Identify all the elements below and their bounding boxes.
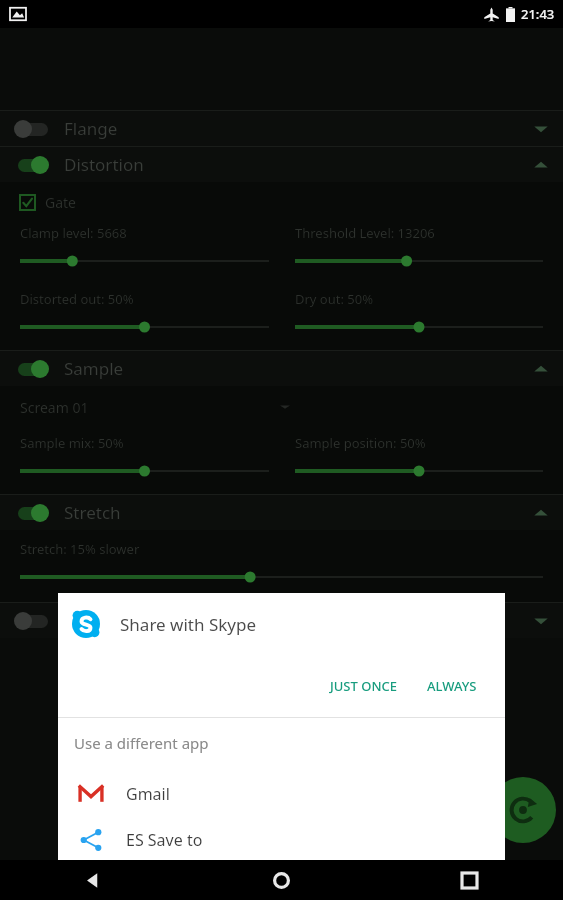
button[interactable]: JUST ONCE xyxy=(318,669,409,703)
button[interactable] xyxy=(20,320,269,334)
button[interactable] xyxy=(20,464,269,478)
staticText: Gate xyxy=(45,193,76,212)
button[interactable] xyxy=(20,254,269,268)
staticText: Use a different app xyxy=(74,733,209,753)
staticText: Sample xyxy=(64,357,124,380)
button[interactable]: Gmail xyxy=(58,768,505,820)
staticText: Sample mix: 50% xyxy=(20,434,124,452)
button[interactable]: Scream 01 xyxy=(20,394,290,420)
staticText: Share with Skype xyxy=(120,613,256,636)
staticText: Clamp level: 5668 xyxy=(20,224,127,242)
staticText: Distorted out: 50% xyxy=(20,290,134,308)
staticText: Dry out: 50% xyxy=(295,290,374,308)
staticText: Threshold Level: 13206 xyxy=(295,224,435,242)
button[interactable]: Refresh xyxy=(490,777,556,843)
staticText: Sample position: 50% xyxy=(295,434,426,452)
staticText: Mix xyxy=(64,609,93,632)
staticText: Gmail xyxy=(126,783,170,805)
button[interactable] xyxy=(295,254,543,268)
button[interactable]: Share with Skype xyxy=(58,593,505,655)
staticText: Stretch xyxy=(64,501,121,524)
staticText: Stretch: 15% slower xyxy=(20,540,140,558)
button[interactable]: Back xyxy=(0,860,187,900)
button[interactable]: Sample xyxy=(0,351,563,386)
button[interactable]: Stretch xyxy=(0,495,563,530)
button[interactable]: Distortion xyxy=(0,147,563,182)
staticText: ALWAYS xyxy=(427,677,477,695)
button[interactable]: Home xyxy=(187,860,375,900)
button[interactable] xyxy=(295,320,543,334)
staticText: Scream 01 xyxy=(20,398,89,417)
button[interactable]: Mix xyxy=(0,603,563,638)
staticText: 21:43 xyxy=(521,5,555,23)
staticText: ES Save to xyxy=(126,829,203,851)
staticText: Distortion xyxy=(64,153,144,176)
button[interactable]: ES Save to xyxy=(58,820,505,860)
button[interactable] xyxy=(20,570,543,584)
button[interactable]: Gate xyxy=(20,193,76,212)
staticText: JUST ONCE xyxy=(330,677,397,695)
button[interactable]: ALWAYS xyxy=(415,669,489,703)
button[interactable]: Flange xyxy=(0,111,563,146)
staticText: Flange xyxy=(64,117,118,140)
button[interactable] xyxy=(295,464,543,478)
button[interactable]: Recent apps xyxy=(375,860,563,900)
